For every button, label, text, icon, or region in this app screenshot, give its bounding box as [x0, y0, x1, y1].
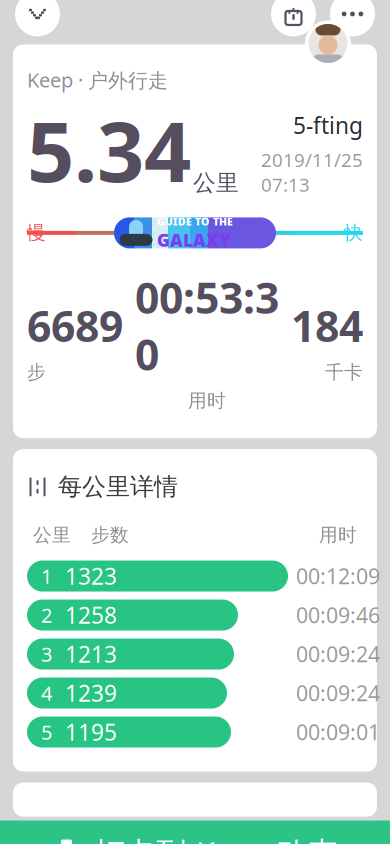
button[interactable]: Share	[271, 0, 316, 36]
staticText: 千卡	[325, 361, 363, 384]
staticText: 2	[41, 602, 52, 628]
staticText: 用时	[188, 389, 226, 412]
button[interactable]: 打卡到 Keep 动态	[0, 820, 390, 844]
staticText: 00:12:09	[296, 562, 380, 590]
staticText: 00:09:24	[296, 679, 380, 707]
staticText: 00:53:30	[135, 269, 279, 382]
staticText: 5-fting	[293, 110, 363, 140]
staticText: 00:09:01	[296, 718, 380, 746]
staticText: 6689	[27, 297, 123, 354]
button[interactable]: Close	[15, 0, 60, 36]
staticText: 公里	[193, 169, 239, 197]
staticText: Keep · 户外行走	[27, 66, 168, 93]
staticText: 用时	[319, 524, 357, 546]
staticText: 步数	[91, 524, 129, 546]
staticText: 00:09:24	[296, 640, 380, 668]
staticText: 1258	[65, 600, 117, 630]
staticText: 1239	[65, 678, 117, 708]
staticText: 公里	[33, 524, 71, 546]
staticText: 1323	[65, 561, 117, 591]
staticText: 快	[344, 221, 363, 244]
staticText: 打卡到 Keep 动态	[94, 832, 338, 844]
staticText: 5	[41, 719, 52, 745]
staticText: 每公里详情	[58, 472, 178, 502]
staticText: 1195	[65, 717, 117, 747]
staticText: 3	[41, 641, 52, 667]
staticText: 2019/11/25 07:13	[261, 147, 363, 197]
staticText: 1	[41, 563, 52, 589]
staticText: 00:09:46	[296, 601, 380, 629]
button[interactable]: More options	[330, 0, 375, 36]
staticText: 1213	[65, 639, 117, 669]
staticText: GUIDE TO THE	[157, 214, 233, 228]
staticText: 步	[27, 361, 46, 384]
staticText: 4	[41, 680, 52, 706]
staticText: 5.34	[27, 95, 191, 205]
staticText: 184	[291, 297, 363, 354]
button[interactable]: Profile 5-fting	[305, 20, 351, 66]
staticText: 慢	[27, 221, 46, 244]
staticText: GALAXY	[157, 228, 231, 251]
